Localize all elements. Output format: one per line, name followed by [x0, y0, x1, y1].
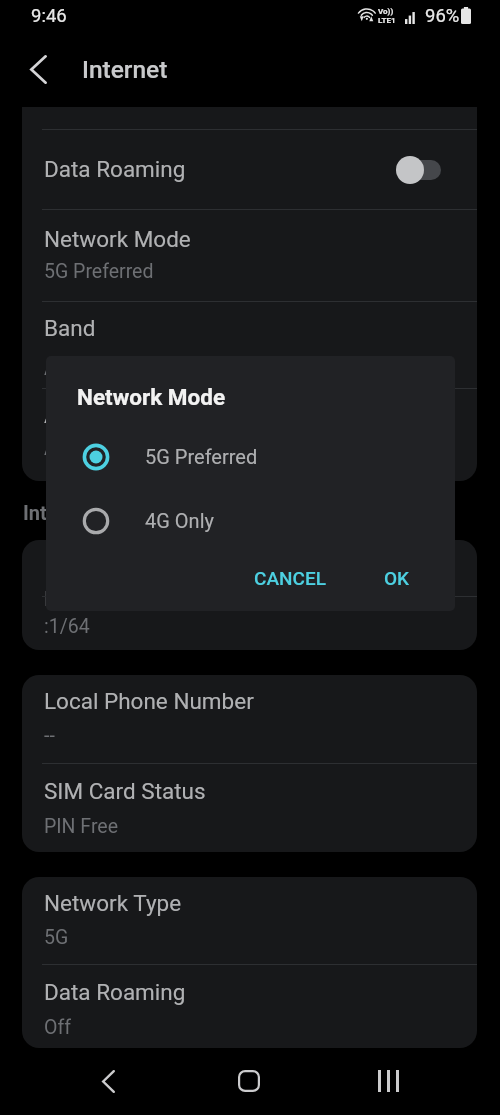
- button[interactable]: Data Roaming: [22, 130, 477, 209]
- staticText: OK: [384, 567, 410, 589]
- button[interactable]: 5G Preferred: [46, 423, 455, 490]
- button[interactable]: SIM Card Status: [22, 764, 477, 852]
- button[interactable]: :1/64: [22, 597, 477, 650]
- button[interactable]: Local Phone Number: [22, 675, 477, 763]
- staticText: CANCEL: [254, 567, 326, 589]
- button[interactable]: Band: [22, 302, 477, 388]
- staticText: Network Type: [44, 890, 182, 916]
- staticText: :1/64: [44, 615, 90, 638]
- staticText: Internet: [82, 55, 168, 84]
- staticText: APN: [44, 437, 83, 460]
- staticText: Local Phone Number: [44, 688, 254, 714]
- staticText: 96%: [425, 5, 460, 27]
- staticText: Network Mode: [44, 226, 191, 252]
- button[interactable]: OK: [369, 556, 425, 600]
- staticText: 5G Preferred: [44, 260, 154, 283]
- staticText: 9:46: [31, 5, 67, 27]
- button[interactable]: Recent apps: [342, 1049, 435, 1115]
- staticText: PIN Free: [44, 815, 118, 838]
- staticText: Internet: [23, 501, 94, 524]
- button[interactable]: Network Mode: [22, 210, 477, 301]
- staticText: Data Roaming: [44, 979, 186, 1005]
- staticText: 5G: [44, 926, 69, 949]
- button[interactable]: Back: [62, 1049, 155, 1115]
- staticText: LTE1: [378, 16, 396, 25]
- button[interactable]: Data Roaming: [22, 965, 477, 1048]
- staticText: Vo)): [378, 7, 394, 16]
- staticText: 4G Only: [145, 509, 214, 532]
- button[interactable]: IMS Registration: [22, 540, 477, 596]
- button[interactable]: Home: [202, 1049, 295, 1115]
- staticText: 5G Preferred: [145, 445, 258, 468]
- button[interactable]: 4G Only: [46, 487, 455, 554]
- button[interactable]: Data roaming toggle: [396, 153, 445, 187]
- staticText: --: [44, 724, 55, 747]
- staticText: Access Point Names: [44, 402, 253, 428]
- staticText: Network Mode: [77, 384, 226, 410]
- staticText: Data Roaming: [44, 156, 186, 182]
- staticText: SIM Card Status: [44, 778, 206, 804]
- staticText: Band: [44, 315, 96, 341]
- button[interactable]: CANCEL: [237, 556, 343, 600]
- staticText: Off: [44, 1016, 71, 1039]
- button[interactable]: Access Point Names: [22, 389, 477, 481]
- button[interactable]: Network Type: [22, 877, 477, 964]
- button[interactable]: Navigate up: [13, 45, 61, 93]
